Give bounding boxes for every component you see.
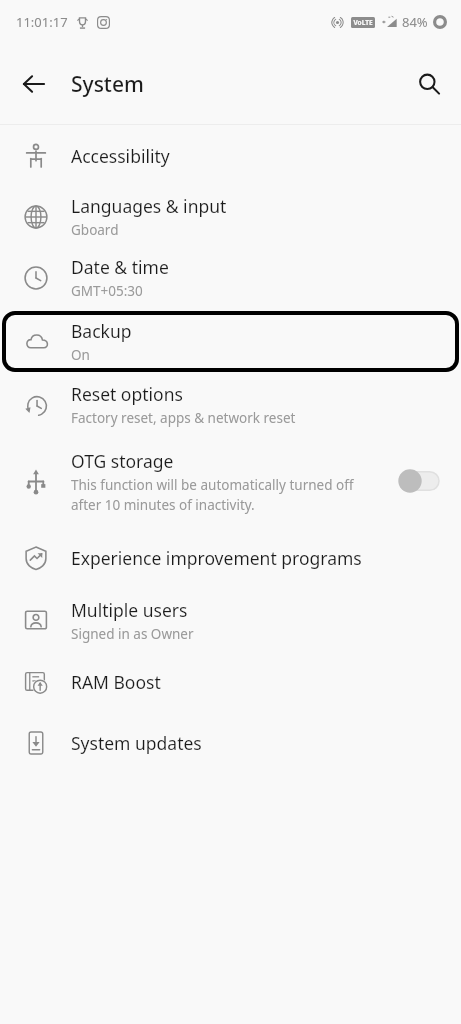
- button[interactable]: System updates: [0, 712, 461, 773]
- staticText: RAM Boost: [71, 670, 161, 694]
- button[interactable]: Experience improvement programs: [0, 527, 461, 589]
- staticText: System updates: [71, 731, 202, 755]
- button[interactable]: RAM Boost: [0, 651, 461, 712]
- button[interactable]: Back: [10, 60, 58, 108]
- button[interactable]: OTG storage toggle: [397, 468, 439, 494]
- staticText: Date & time: [71, 255, 169, 279]
- staticText: 84%: [402, 13, 428, 31]
- button[interactable]: Accessibility: [0, 125, 461, 186]
- staticText: System: [71, 70, 144, 99]
- button[interactable]: Multiple users: [0, 589, 461, 651]
- staticText: This function will be automatically turn…: [71, 476, 354, 514]
- staticText: Signed in as Owner: [71, 625, 194, 643]
- staticText: OTG storage: [71, 449, 174, 473]
- button[interactable]: Backup: [0, 308, 461, 374]
- button[interactable]: Search: [405, 60, 453, 108]
- button[interactable]: Languages & input: [0, 186, 461, 247]
- staticText: GMT+05:30: [71, 282, 143, 300]
- staticText: On: [71, 346, 90, 364]
- staticText: Backup: [71, 319, 132, 343]
- staticText: Factory reset, apps & network reset: [71, 409, 296, 427]
- staticText: VoLTE: [353, 18, 373, 27]
- staticText: Multiple users: [71, 598, 188, 622]
- staticText: Languages & input: [71, 194, 227, 218]
- staticText: Experience improvement programs: [71, 546, 362, 570]
- button[interactable]: Date & time: [0, 247, 461, 308]
- staticText: Gboard: [71, 221, 119, 239]
- button[interactable]: Reset options: [0, 374, 461, 435]
- staticText: Accessibility: [71, 144, 170, 168]
- staticText: Reset options: [71, 382, 183, 406]
- staticText: 11:01:17: [16, 13, 68, 31]
- button[interactable]: OTG storage: [0, 435, 461, 527]
